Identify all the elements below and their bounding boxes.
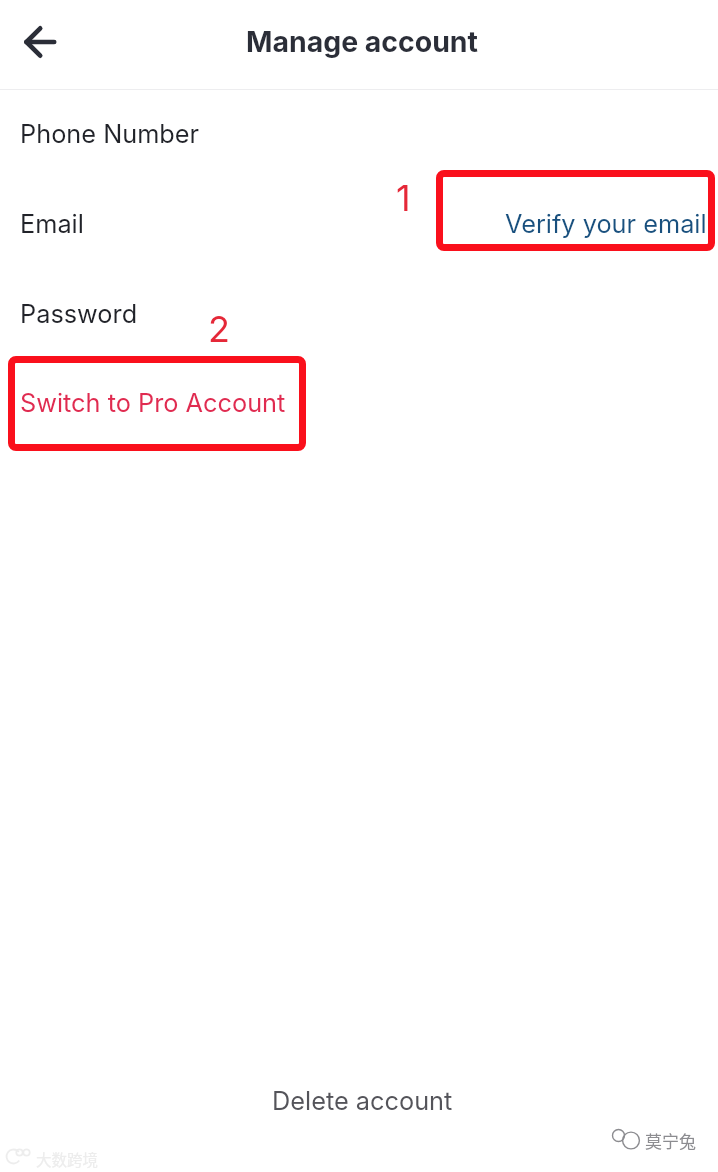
button[interactable]: Password bbox=[0, 268, 718, 358]
button[interactable]: Phone Number bbox=[0, 88, 718, 178]
staticText: 1 bbox=[396, 176, 411, 220]
staticText: Password bbox=[20, 298, 138, 329]
button[interactable]: Delete account bbox=[0, 1055, 718, 1145]
button[interactable]: Back bbox=[8, 10, 72, 74]
staticText: 莫宁兔 bbox=[645, 1128, 696, 1153]
button[interactable]: Email bbox=[0, 178, 718, 268]
staticText: Verify your email bbox=[505, 208, 707, 239]
staticText: Delete account bbox=[272, 1085, 453, 1116]
staticText: 大数跨境 bbox=[36, 1148, 99, 1170]
button[interactable]: Verify your email bbox=[430, 178, 710, 268]
staticText: Phone Number bbox=[20, 118, 200, 149]
button[interactable]: Switch to Pro Account bbox=[0, 357, 718, 447]
staticText: Email bbox=[20, 208, 84, 239]
staticText: Switch to Pro Account bbox=[20, 387, 286, 418]
staticText: 2 bbox=[208, 307, 230, 351]
staticText: Manage account bbox=[246, 24, 478, 58]
